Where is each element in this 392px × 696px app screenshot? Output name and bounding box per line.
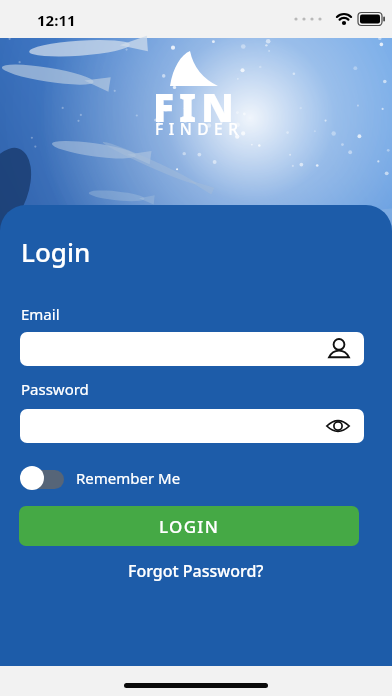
button[interactable]: Forgot Password? bbox=[128, 560, 264, 582]
staticText: 12:11 bbox=[37, 10, 76, 30]
button[interactable] bbox=[20, 332, 364, 366]
staticText: FINDER bbox=[155, 118, 244, 139]
staticText: Email bbox=[21, 304, 60, 324]
button[interactable]: Remember Me bbox=[19, 466, 181, 490]
button[interactable]: LOGIN bbox=[19, 506, 359, 546]
staticText: LOGIN bbox=[159, 515, 220, 538]
staticText: Login bbox=[21, 234, 91, 269]
staticText: Remember Me bbox=[76, 468, 181, 488]
staticText: FIN bbox=[153, 80, 239, 133]
button[interactable] bbox=[20, 409, 364, 443]
staticText: Password bbox=[21, 379, 89, 399]
